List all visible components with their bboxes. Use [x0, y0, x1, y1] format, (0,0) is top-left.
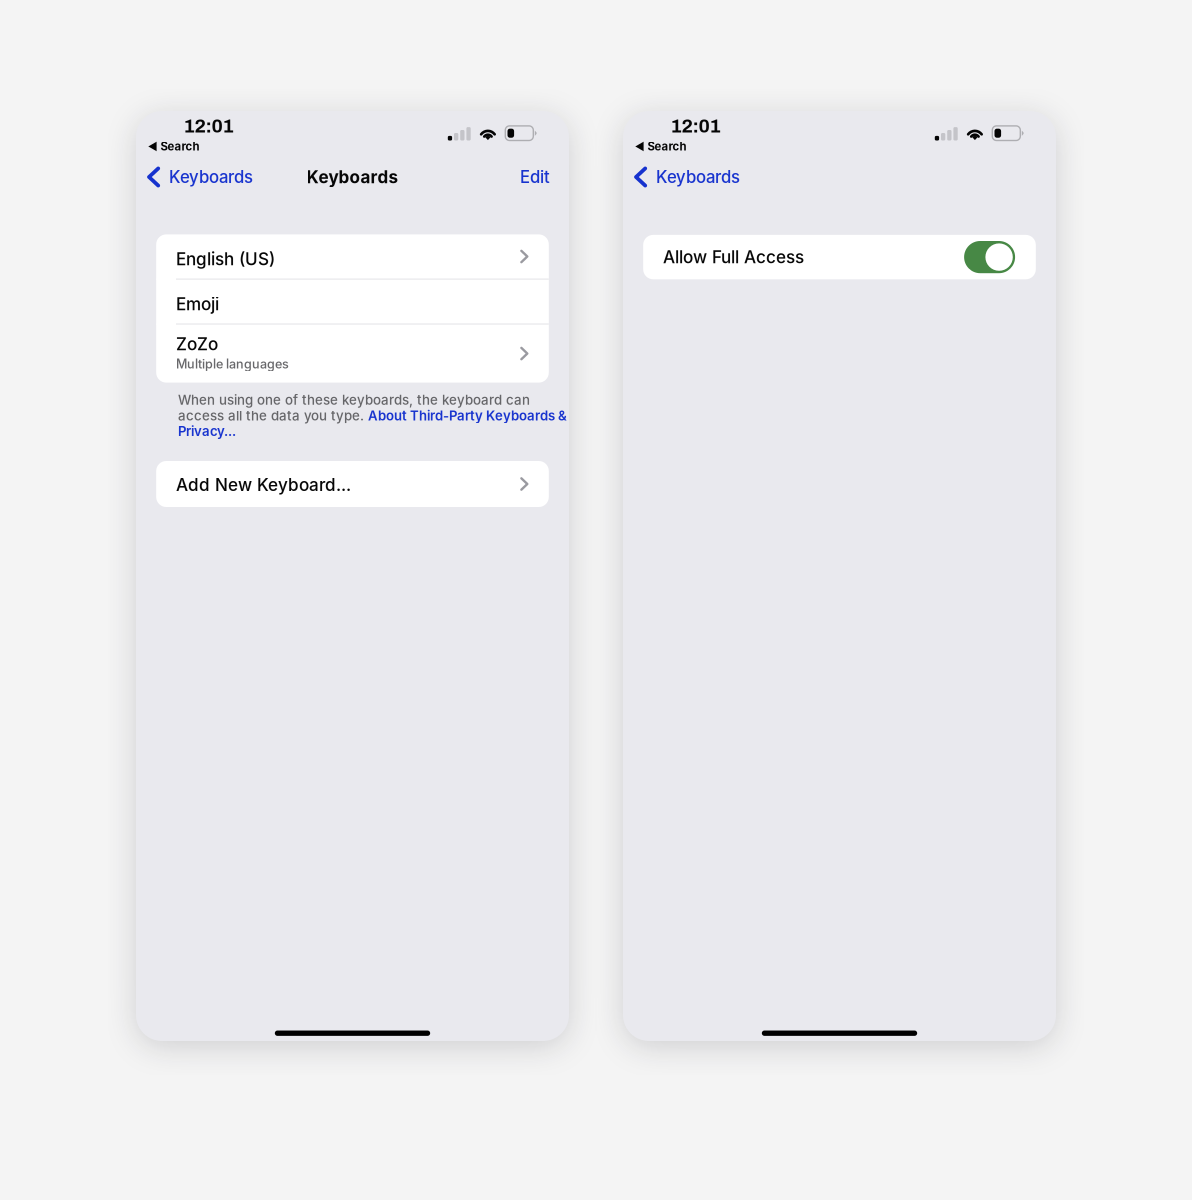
- staticText: 12:01: [183, 116, 233, 136]
- button[interactable]: Edit: [500, 155, 569, 199]
- button[interactable]: ZoZo: [156, 324, 549, 383]
- button[interactable]: Emoji: [156, 280, 549, 323]
- staticText: When using one of these keyboards, the k…: [178, 392, 530, 408]
- staticText: Privacy...: [178, 423, 236, 439]
- button[interactable]: Keyboards: [136, 155, 263, 199]
- staticText: Multiple languages: [176, 356, 289, 371]
- staticText: English (US): [176, 249, 275, 269]
- staticText: Keyboards: [656, 167, 740, 187]
- button[interactable]: Keyboards: [623, 155, 750, 199]
- staticText: Edit: [520, 167, 550, 187]
- staticText: Search: [160, 140, 199, 153]
- button[interactable]: Add New Keyboard...: [156, 461, 549, 507]
- staticText: access all the data you type.: [178, 408, 368, 424]
- button[interactable]: English (US): [156, 234, 549, 279]
- staticText: Add New Keyboard...: [176, 474, 351, 495]
- staticText: 12:01: [670, 116, 720, 136]
- button[interactable]: Privacy...: [178, 423, 236, 439]
- staticText: ZoZo: [176, 334, 218, 354]
- staticText: Emoji: [176, 294, 219, 314]
- button[interactable]: Allow Full Access: [643, 235, 1036, 279]
- button[interactable]: access all the data you type.: [178, 408, 567, 424]
- staticText: Allow Full Access: [663, 247, 804, 267]
- staticText: About Third-Party Keyboards &: [368, 408, 567, 424]
- staticText: Search: [647, 140, 686, 153]
- staticText: Keyboards: [169, 167, 253, 187]
- staticText: Keyboards: [306, 167, 398, 187]
